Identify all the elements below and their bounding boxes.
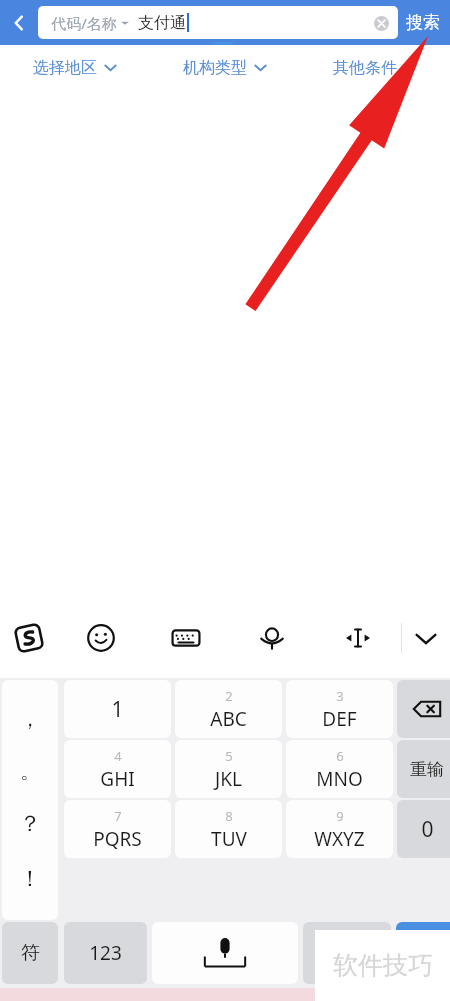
staticText: 9 [336,807,344,825]
staticText: 软件技巧 [333,950,433,981]
button[interactable]: Back [0,0,38,45]
button[interactable]: Keyboard layout [143,598,229,678]
staticText: 支付通 [138,13,186,33]
staticText: 。 [20,759,40,784]
staticText: 4 [114,747,122,765]
staticText: ！ [19,865,41,893]
button[interactable]: Hide keyboard [402,598,450,678]
button[interactable]: 其他条件 [300,45,450,90]
button[interactable]: Backspace [397,680,450,738]
button[interactable]: Space [152,922,298,984]
button[interactable]: Sogou input method [0,598,58,678]
button[interactable]: 3 [286,680,393,738]
staticText: 8 [225,807,233,825]
button[interactable]: 代码/名称 [38,6,398,39]
button[interactable] [396,922,450,984]
staticText: 搜索 [406,12,440,33]
staticText: ， [20,707,40,732]
button[interactable]: 0 [397,800,450,858]
staticText: 选择地区 [33,58,97,78]
staticText: 符 [21,941,40,965]
staticText: 7 [114,807,122,825]
staticText: ？ [19,810,41,838]
staticText: JKL [215,766,242,792]
button[interactable] [303,922,391,984]
button[interactable]: 123 [64,922,147,984]
button[interactable]: 7 [64,800,171,858]
staticText: 2 [225,687,233,705]
button[interactable]: 重输 [397,740,450,798]
staticText: 0 [421,815,434,844]
button[interactable]: Emoji [58,598,143,678]
button[interactable]: 9 [286,800,393,858]
staticText: 重输 [410,759,444,780]
staticText: 1 [111,695,124,724]
button[interactable]: 选择地区 [0,45,150,90]
staticText: 其他条件 [333,58,397,78]
staticText: 机构类型 [183,58,247,78]
staticText: GHI [100,766,135,792]
staticText: TUV [211,826,247,852]
staticText: 123 [89,940,122,966]
button[interactable]: 符 [2,922,58,984]
staticText: PQRS [93,826,142,852]
staticText: ABC [210,706,247,732]
staticText: 代码/名称 [51,13,117,33]
staticText: 5 [225,747,233,765]
button[interactable]: 4 [64,740,171,798]
button[interactable]: Voice input [229,598,315,678]
button[interactable]: Clear text [366,8,396,38]
button[interactable]: 2 [175,680,282,738]
staticText: 6 [336,747,344,765]
button[interactable]: 5 [175,740,282,798]
staticText: 3 [336,687,344,705]
button[interactable]: 搜索 [398,0,450,45]
button[interactable]: 8 [175,800,282,858]
button[interactable]: Move cursor [315,598,401,678]
staticText: MNO [316,766,363,792]
staticText: WXYZ [314,826,365,852]
button[interactable]: 机构类型 [150,45,300,90]
button[interactable]: ， [2,680,58,920]
button[interactable]: 6 [286,740,393,798]
button[interactable]: 1 [64,680,171,738]
staticText: DEF [322,706,357,732]
